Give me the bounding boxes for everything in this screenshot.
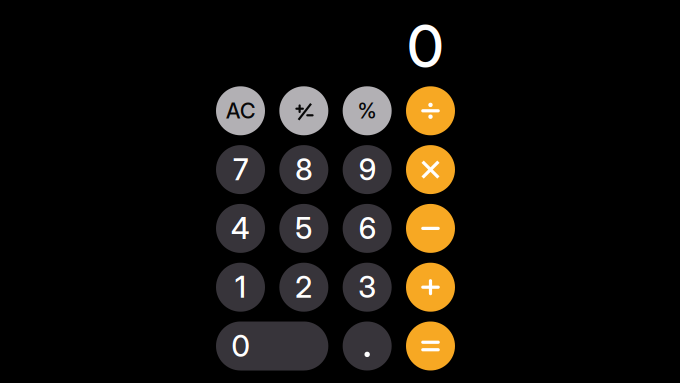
button[interactable]: Plus Minus [279, 86, 328, 135]
staticText: AC [226, 98, 255, 124]
staticText: 7 [233, 152, 248, 187]
button[interactable]: 7 [216, 145, 265, 194]
button[interactable]: Decimal point [343, 321, 392, 370]
button[interactable]: Divide [406, 86, 455, 135]
button[interactable]: 0 [216, 321, 328, 370]
button[interactable]: Add [406, 263, 455, 312]
button[interactable]: Equals [406, 321, 455, 370]
button[interactable]: 9 [343, 145, 392, 194]
button[interactable]: 8 [279, 145, 328, 194]
staticText: 0 [407, 11, 444, 82]
staticText: 1 [235, 269, 246, 305]
staticText: 3 [358, 269, 376, 305]
button[interactable]: Multiply [406, 145, 455, 194]
button[interactable]: 1 [216, 263, 265, 312]
button[interactable]: 2 [279, 263, 328, 312]
button[interactable]: Subtract [406, 204, 455, 253]
button[interactable]: AC [216, 86, 265, 135]
button[interactable]: 4 [216, 204, 265, 253]
button[interactable]: 3 [343, 263, 392, 312]
staticText: 6 [359, 211, 376, 246]
button[interactable]: 5 [279, 204, 328, 253]
staticText: 8 [295, 152, 312, 187]
staticText: 0 [231, 328, 249, 364]
staticText: 5 [295, 211, 312, 246]
staticText: % [358, 98, 377, 124]
staticText: 9 [359, 152, 376, 187]
button[interactable]: % [343, 86, 392, 135]
button[interactable]: 6 [343, 204, 392, 253]
staticText: 4 [231, 211, 250, 246]
staticText: 2 [295, 269, 312, 305]
